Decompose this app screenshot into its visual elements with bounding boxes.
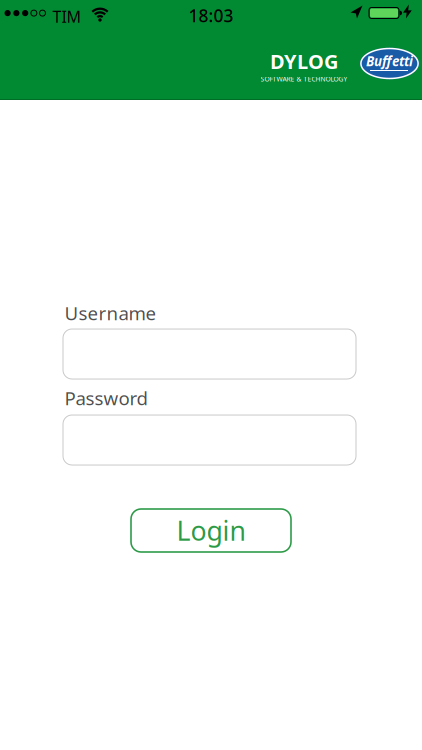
staticText: Buffetti [366, 52, 413, 70]
button[interactable]: Login [131, 509, 291, 552]
staticText: Username [64, 300, 156, 325]
staticText: TIM [52, 6, 81, 27]
staticText: DYLOG [270, 48, 338, 75]
staticText: Password [64, 385, 147, 410]
staticText: Login [176, 513, 245, 548]
staticText: 18:03 [188, 4, 233, 27]
staticText: SOFTWARE & TECHNOLOGY [260, 75, 347, 83]
